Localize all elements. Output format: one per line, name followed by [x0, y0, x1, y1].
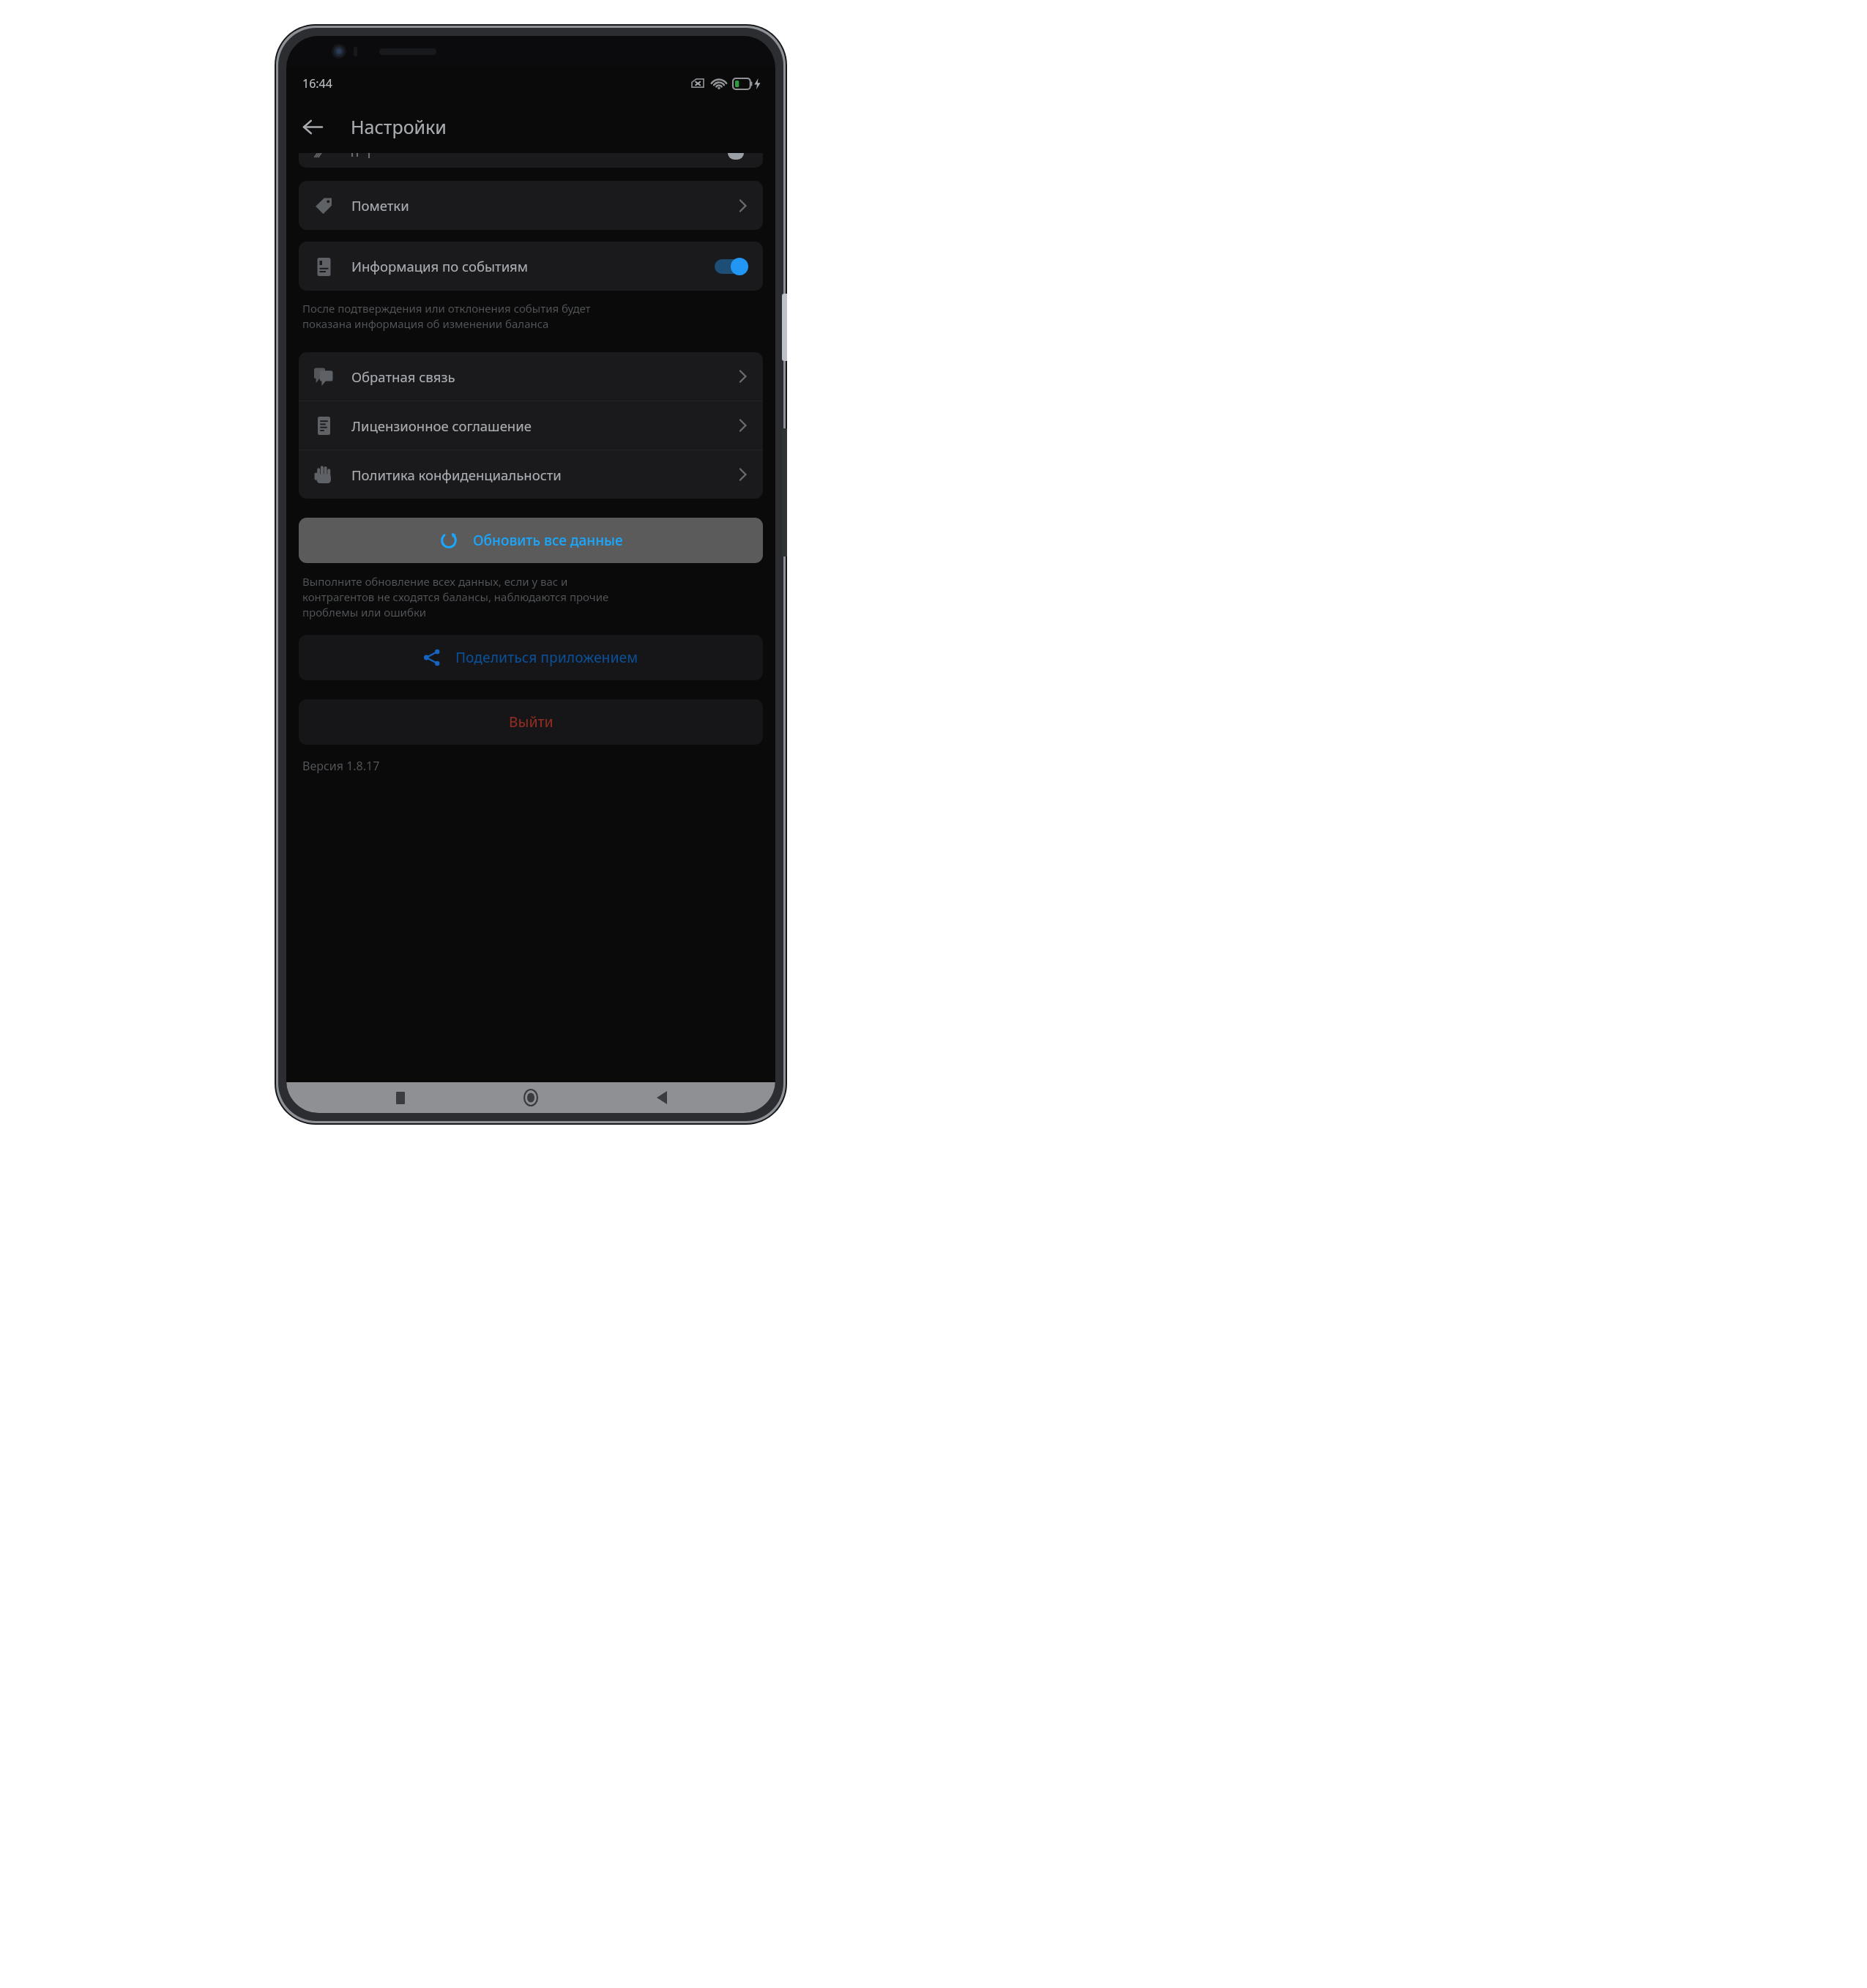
button[interactable]: Пометки	[299, 181, 763, 230]
button[interactable]: Политика конфиденциальности	[299, 450, 763, 499]
button[interactable]: Back	[294, 108, 332, 146]
staticText: Выйти	[509, 712, 554, 731]
staticText: Обновить все данные	[473, 531, 623, 550]
button[interactable]: Обратная связь	[299, 352, 763, 401]
button[interactable]: Back	[645, 1082, 679, 1113]
staticText: После подтверждения или отклонения событ…	[302, 301, 591, 332]
staticText: Пометки	[351, 196, 409, 215]
staticText: Настройки	[351, 114, 447, 139]
staticText: Версия 1.8.17	[302, 758, 380, 774]
button[interactable]	[299, 153, 763, 168]
button[interactable]: Home	[514, 1082, 548, 1113]
button[interactable]: Recent apps	[384, 1082, 417, 1113]
staticText: Выполните обновление всех данных, если у…	[302, 574, 609, 620]
button[interactable]: Обновить все данные	[299, 518, 763, 563]
button[interactable]: Выйти	[299, 699, 763, 745]
staticText: Лицензионное соглашение	[351, 417, 532, 435]
button[interactable]: Лицензионное соглашение	[299, 401, 763, 450]
staticText: Поделиться приложением	[455, 648, 638, 667]
staticText: Политика конфиденциальности	[351, 466, 562, 484]
staticText: Обратная связь	[351, 368, 455, 386]
button[interactable]: Информация по событиям	[299, 242, 763, 291]
button[interactable]: Поделиться приложением	[299, 635, 763, 680]
staticText: 16:44	[302, 75, 332, 92]
staticText: Информация по событиям	[351, 257, 529, 275]
